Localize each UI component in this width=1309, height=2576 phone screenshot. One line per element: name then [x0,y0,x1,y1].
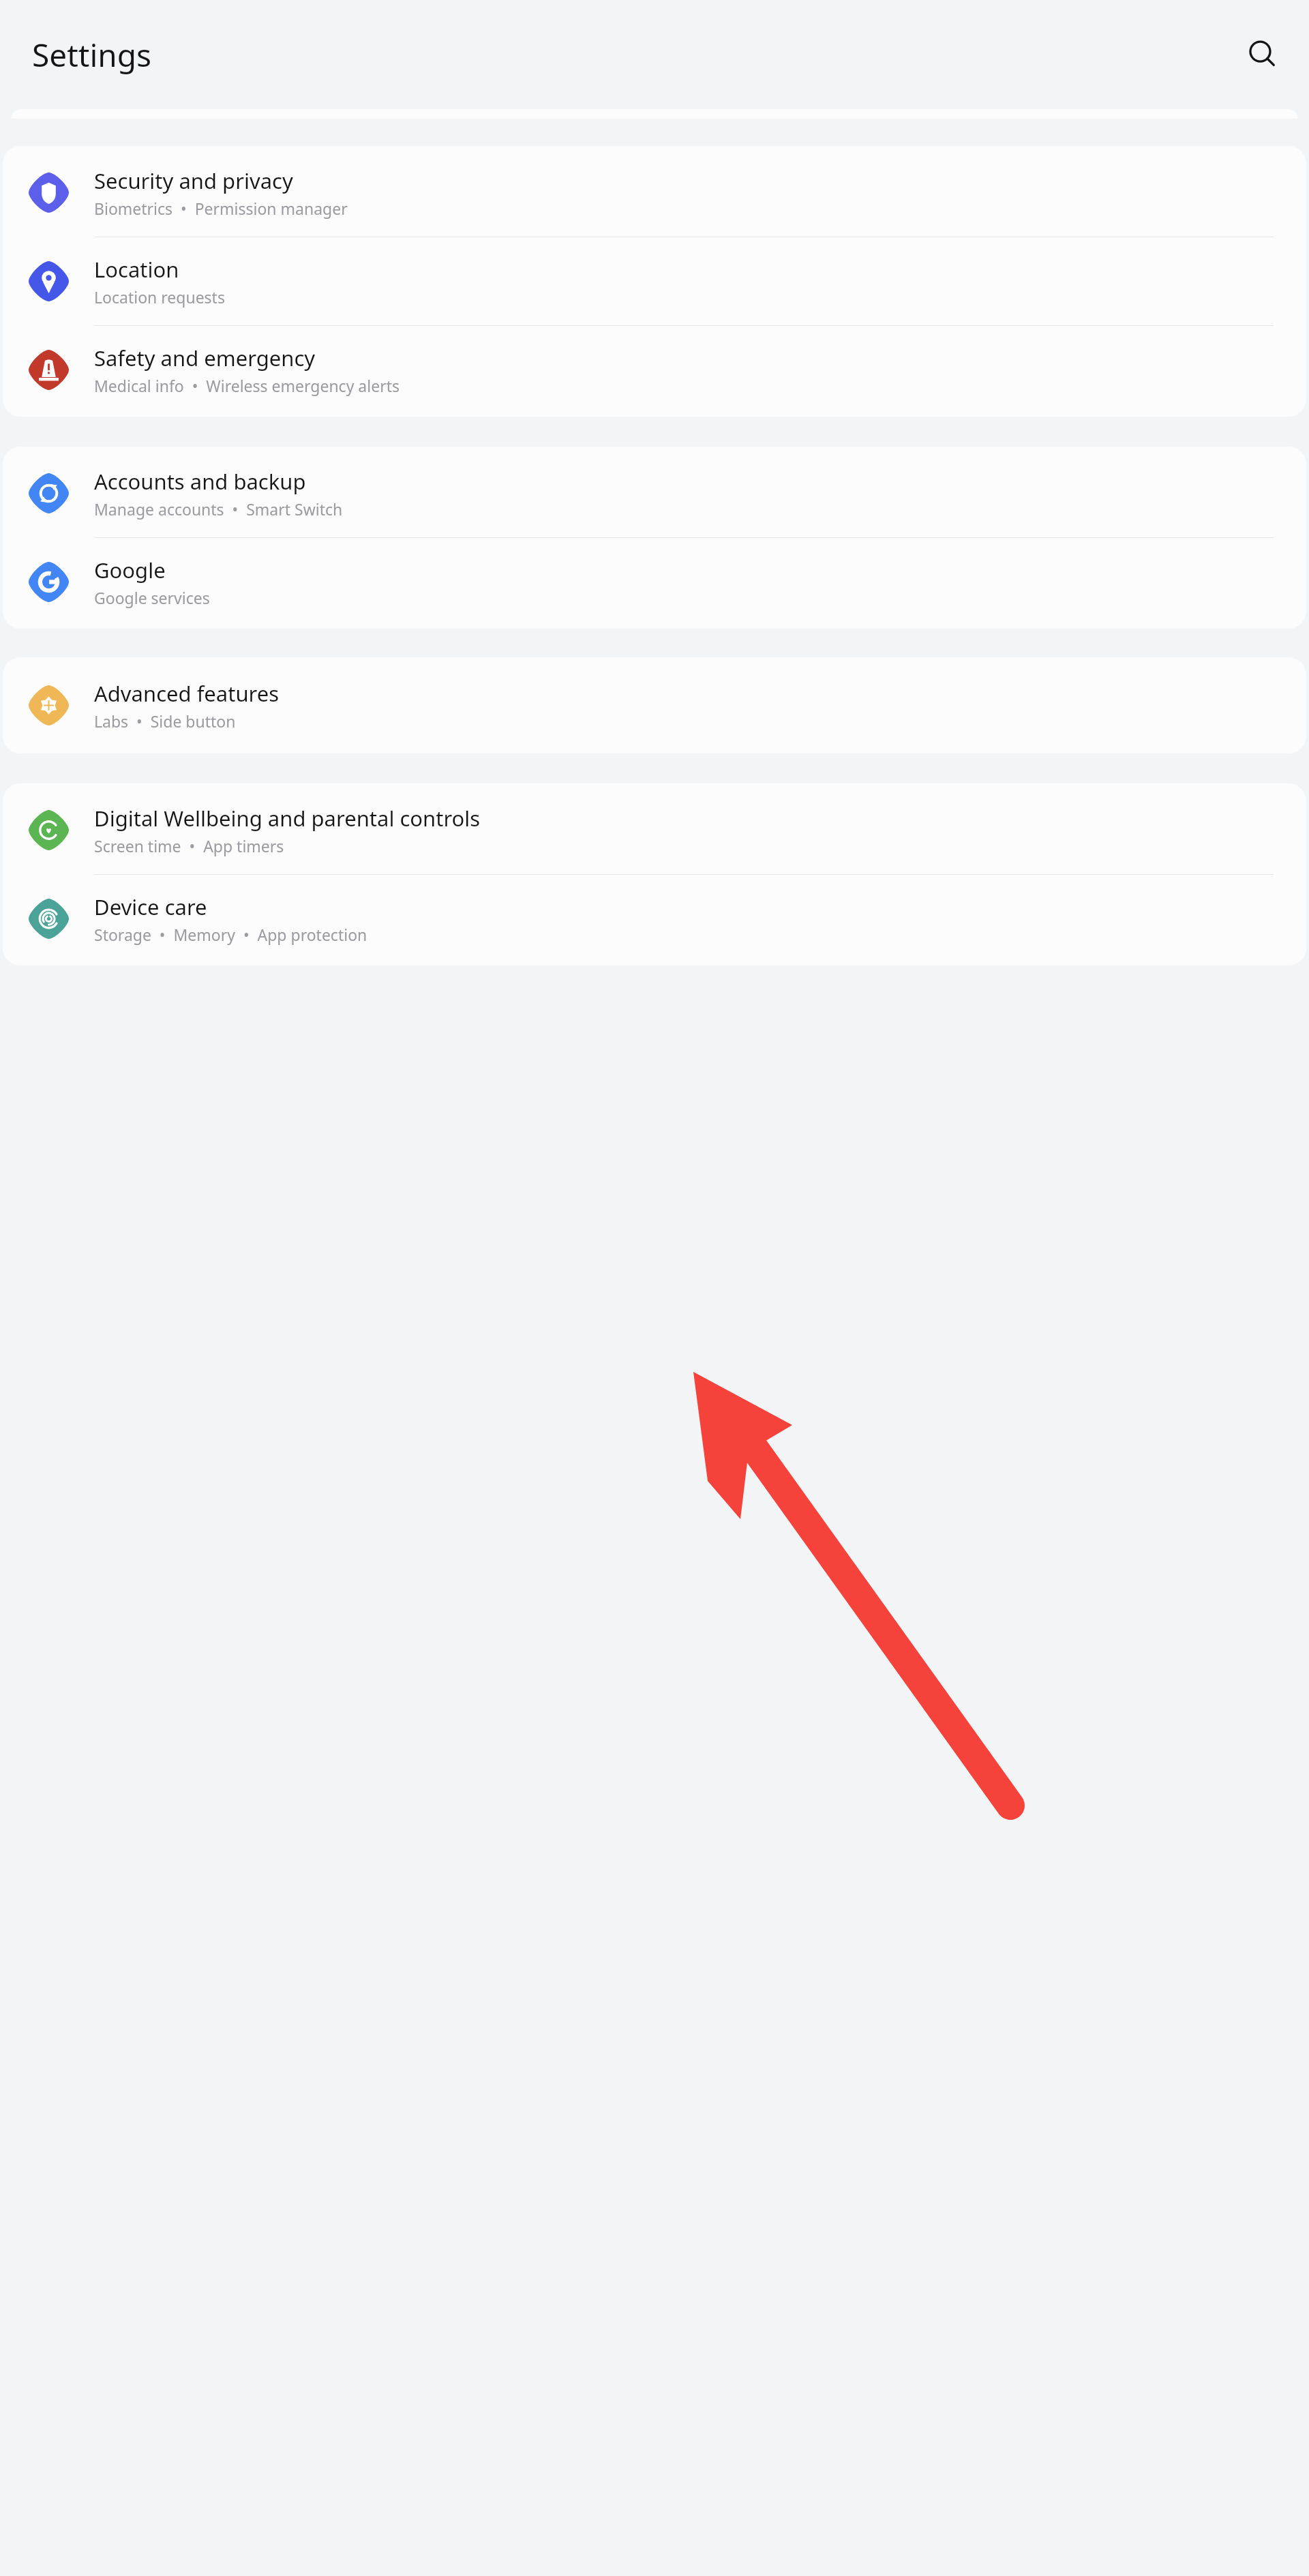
button[interactable]: Device care [3,875,1306,965]
staticText: Security and privacy [94,166,293,195]
staticText: Location [94,255,179,284]
button[interactable]: Advanced features [3,657,1306,753]
button[interactable]: Location [3,237,1306,326]
staticText: Safety and emergency [94,344,316,372]
staticText: Advanced features [94,679,280,708]
staticText: Screen time • App timers [94,835,284,856]
button[interactable]: Security and privacy [3,146,1306,237]
staticText: Device care [94,893,207,921]
staticText: Biometrics • Permission manager [94,198,348,219]
button[interactable]: Accounts and backup [3,447,1306,538]
staticText: Settings [32,33,152,76]
button[interactable]: Safety and emergency [3,326,1306,417]
staticText: Storage • Memory • App protection [94,924,367,945]
button[interactable]: Google [3,538,1306,629]
staticText: Medical info • Wireless emergency alerts [94,375,400,396]
staticText: Manage accounts • Smart Switch [94,498,343,520]
staticText: Accounts and backup [94,467,306,496]
staticText: Google services [94,587,210,608]
staticText: Google [94,556,166,584]
staticText: Digital Wellbeing and parental controls [94,804,481,833]
staticText: Location requests [94,286,225,308]
button[interactable]: Search [1239,31,1286,78]
staticText: Labs • Side button [94,710,236,732]
button[interactable]: Digital Wellbeing and parental controls [3,783,1306,875]
